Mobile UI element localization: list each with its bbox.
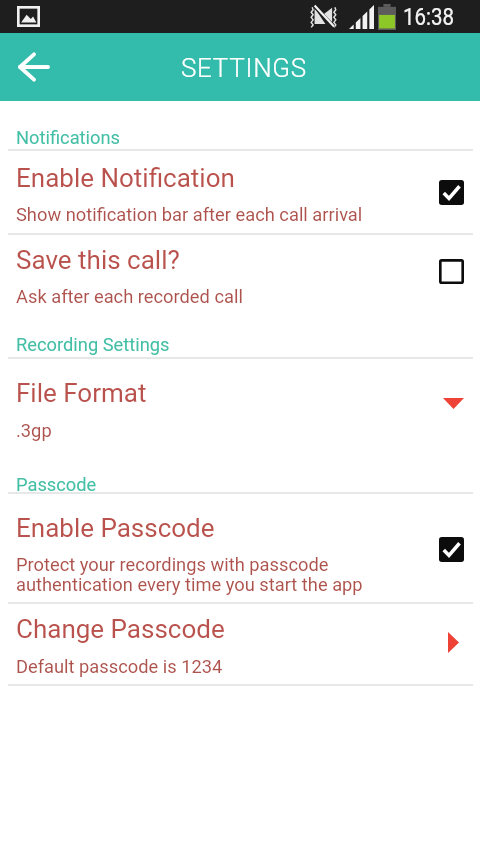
staticText: Save this call?	[16, 245, 180, 275]
staticText: SETTINGS	[181, 53, 307, 83]
staticText: File Format	[16, 378, 147, 408]
staticText: Enable Notification	[16, 163, 235, 193]
staticText: Show notification bar after each call ar…	[16, 204, 363, 225]
staticText: Change Passcode	[16, 614, 225, 644]
staticText: Enable Passcode	[16, 513, 215, 543]
button[interactable]	[0, 358, 480, 450]
button[interactable]: Choose file format	[433, 383, 474, 424]
staticText: Passcode	[16, 474, 97, 495]
staticText: Protect your recordings with passcode au…	[16, 555, 363, 595]
button[interactable]	[0, 150, 480, 233]
staticText: Default passcode is 1234	[16, 656, 223, 677]
button[interactable]	[0, 493, 480, 602]
staticText: Recording Settings	[16, 334, 170, 355]
button[interactable]: Checked	[431, 529, 472, 570]
button[interactable]: Checked	[431, 172, 472, 213]
button[interactable]: Change passcode	[433, 622, 474, 663]
staticText: Ask after each recorded call	[16, 286, 243, 307]
button[interactable]	[0, 234, 480, 315]
staticText: Notifications	[16, 127, 121, 148]
button[interactable]: Unchecked	[431, 251, 472, 292]
staticText: .3gp	[16, 420, 52, 441]
staticText: 16:38	[403, 3, 455, 30]
button[interactable]	[0, 603, 480, 684]
button[interactable]: Back	[6, 39, 62, 95]
